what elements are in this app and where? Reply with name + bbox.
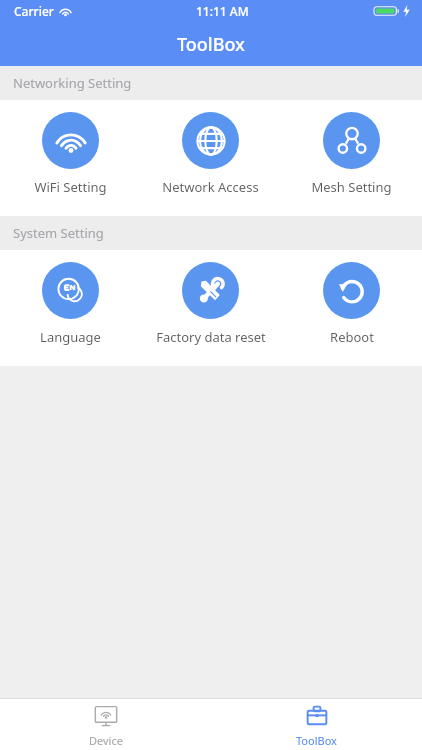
button[interactable]: Factory data reset: [140, 250, 281, 366]
staticText: Language: [40, 328, 101, 346]
staticText: System Setting: [13, 224, 104, 242]
staticText: Reboot: [330, 328, 374, 346]
button[interactable]: Device: [0, 698, 211, 750]
staticText: ToolBox: [177, 32, 245, 57]
staticText: Device: [89, 733, 123, 748]
staticText: Factory data reset: [156, 328, 266, 346]
staticText: WiFi Setting: [34, 178, 107, 196]
staticText: Networking Setting: [13, 74, 132, 92]
other: Device: [93, 704, 119, 730]
button[interactable]: Mesh Setting: [281, 100, 422, 216]
staticText: Network Access: [162, 178, 259, 196]
staticText: ToolBox: [296, 733, 337, 748]
other: ToolBox: [304, 704, 330, 730]
button[interactable]: Language: [0, 250, 140, 366]
staticText: Carrier: [14, 3, 54, 19]
staticText: Mesh Setting: [311, 178, 392, 196]
button[interactable]: WiFi Setting: [0, 100, 140, 216]
button[interactable]: ToolBox: [211, 698, 422, 750]
button[interactable]: Network Access: [140, 100, 281, 216]
button[interactable]: Reboot: [281, 250, 422, 366]
staticText: 11:11 AM: [196, 3, 249, 19]
